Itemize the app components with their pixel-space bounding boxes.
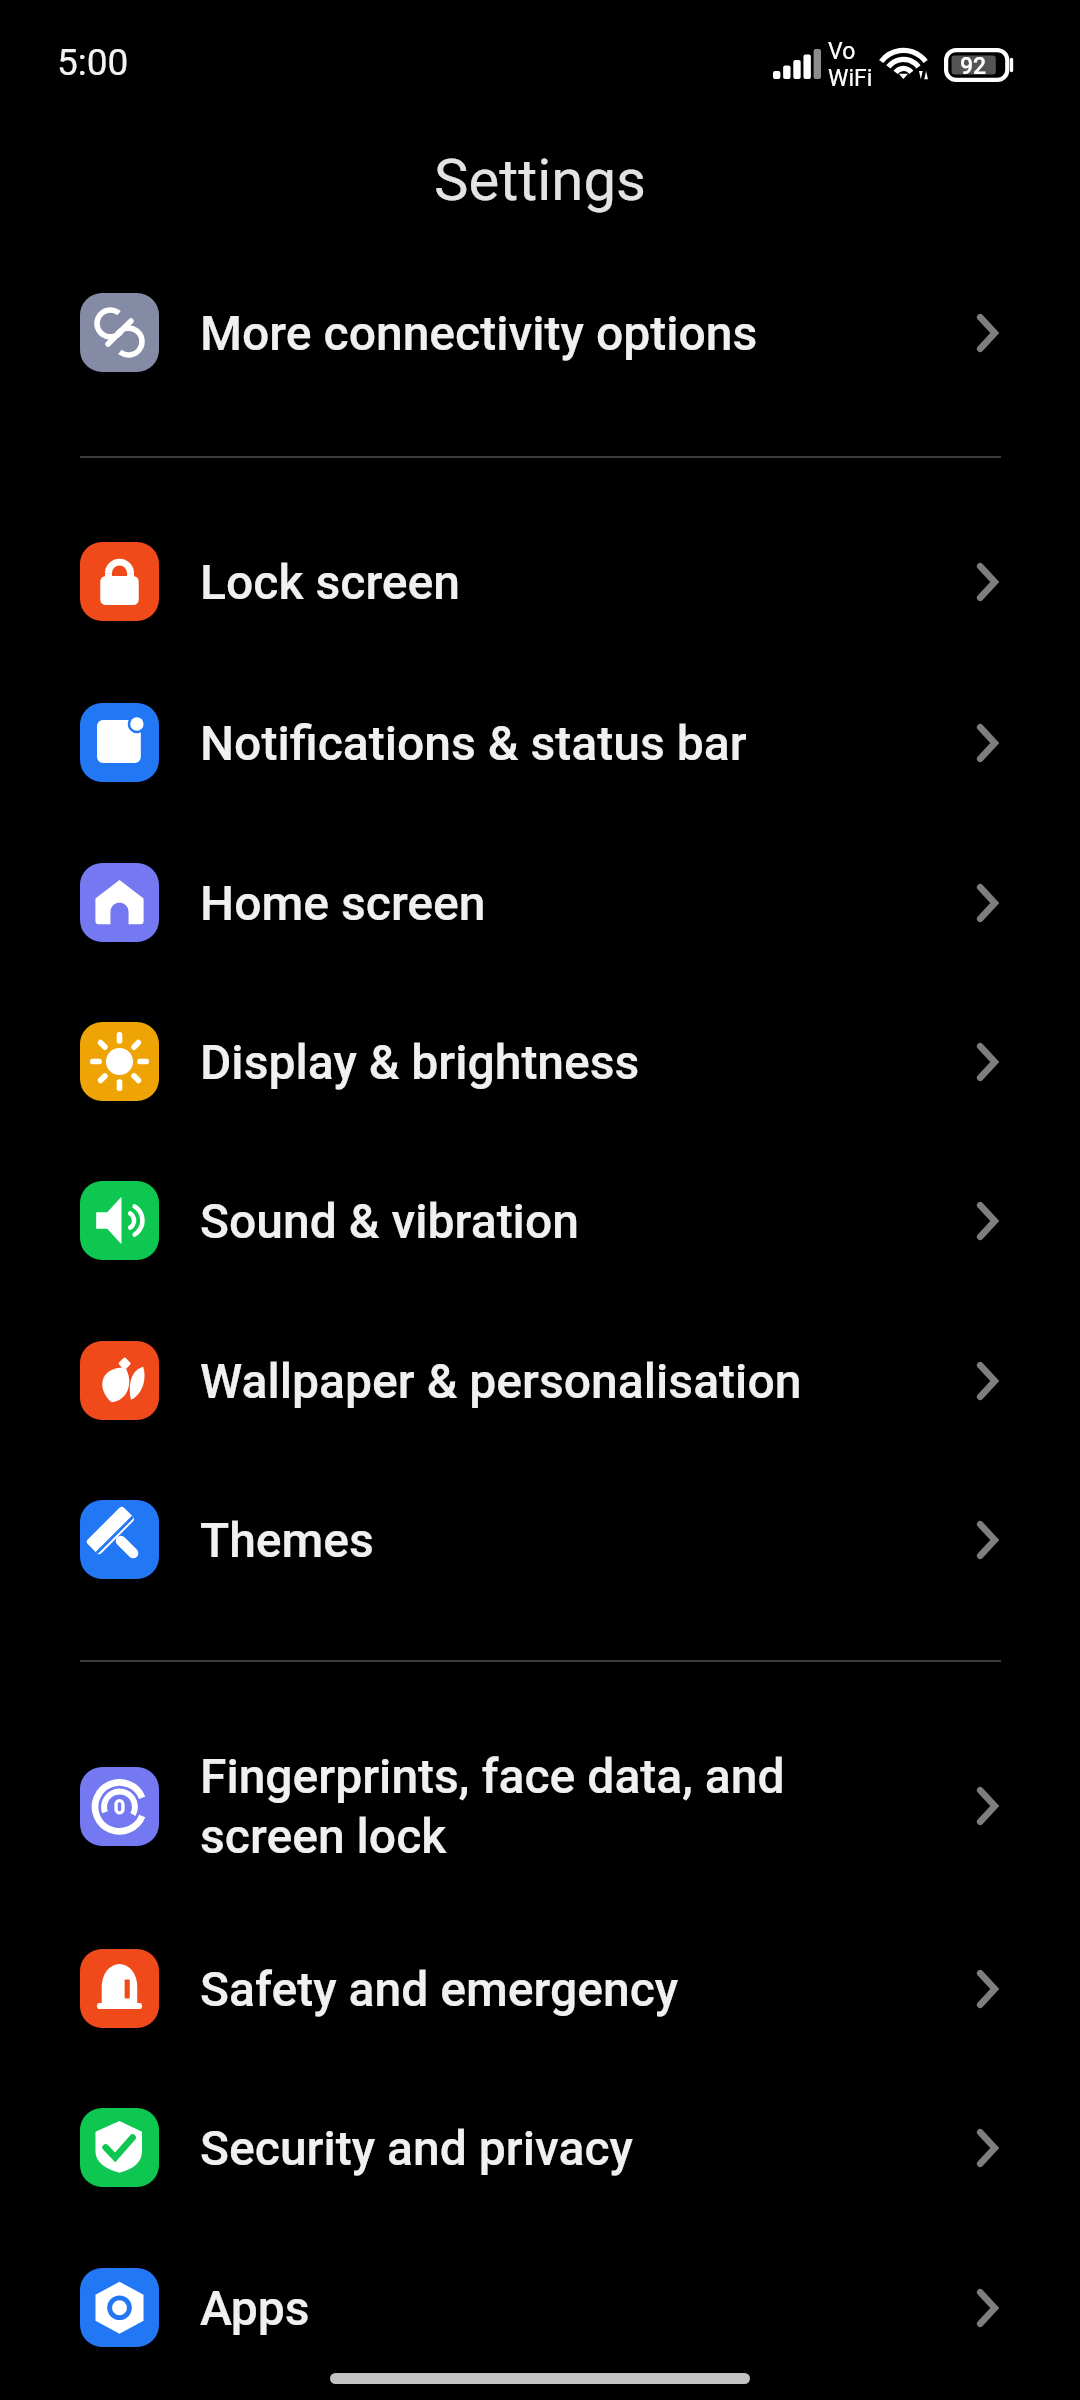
button[interactable]: Security and privacy — [0, 2068, 1080, 2227]
staticText: 92 — [960, 53, 987, 80]
button[interactable]: Home screen — [0, 823, 1080, 982]
staticText: Apps — [200, 2280, 936, 2336]
button[interactable]: Display & brightness — [0, 982, 1080, 1141]
staticText: Safety and emergency — [200, 1961, 936, 2017]
staticText: Settings — [0, 146, 1080, 214]
button[interactable]: Themes — [0, 1460, 1080, 1619]
button[interactable]: Apps — [0, 2228, 1080, 2387]
staticText: Wallpaper & personalisation — [200, 1353, 936, 1409]
button[interactable]: More connectivity options — [0, 253, 1080, 412]
button[interactable]: Notifications & status bar — [0, 663, 1080, 822]
staticText: Lock screen — [200, 554, 936, 610]
staticText: Display & brightness — [200, 1034, 936, 1090]
staticText: WiFi — [828, 65, 873, 92]
button[interactable]: Sound & vibration — [0, 1141, 1080, 1300]
button[interactable]: Safety and emergency — [0, 1909, 1080, 2068]
staticText: 5:00 — [57, 41, 129, 84]
staticText: Security and privacy — [200, 2120, 936, 2176]
staticText: Notifications & status bar — [200, 715, 936, 771]
staticText: Home screen — [200, 875, 936, 931]
staticText: More connectivity options — [200, 305, 936, 361]
staticText: Sound & vibration — [200, 1193, 936, 1249]
staticText: Vo — [828, 38, 856, 65]
button[interactable]: Fingerprints, face data, and screen lock — [0, 1704, 1080, 1908]
button[interactable]: Wallpaper & personalisation — [0, 1301, 1080, 1460]
button[interactable]: Lock screen — [0, 502, 1080, 661]
staticText: Fingerprints, face data, and screen lock — [200, 1748, 936, 1865]
staticText: Themes — [200, 1512, 936, 1568]
